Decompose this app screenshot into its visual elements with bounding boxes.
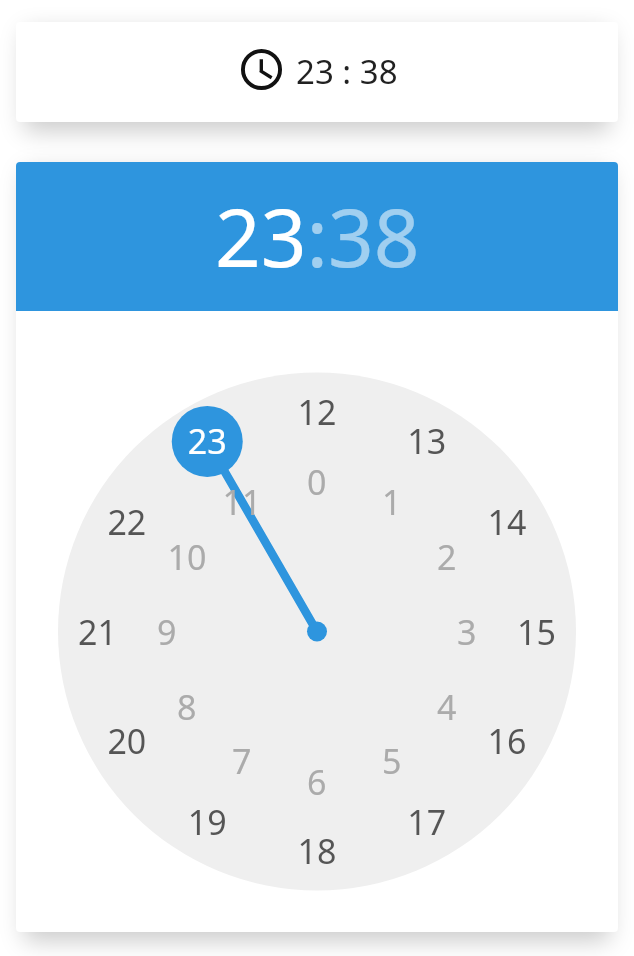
button[interactable]: Clock bbox=[16, 22, 618, 122]
other: Clock bbox=[239, 47, 284, 92]
button[interactable]: Select hour bbox=[16, 311, 618, 932]
button[interactable]: 23:38 bbox=[16, 162, 618, 311]
staticText: 23:38 bbox=[215, 181, 420, 290]
staticText: 23 : 38 bbox=[296, 49, 398, 94]
